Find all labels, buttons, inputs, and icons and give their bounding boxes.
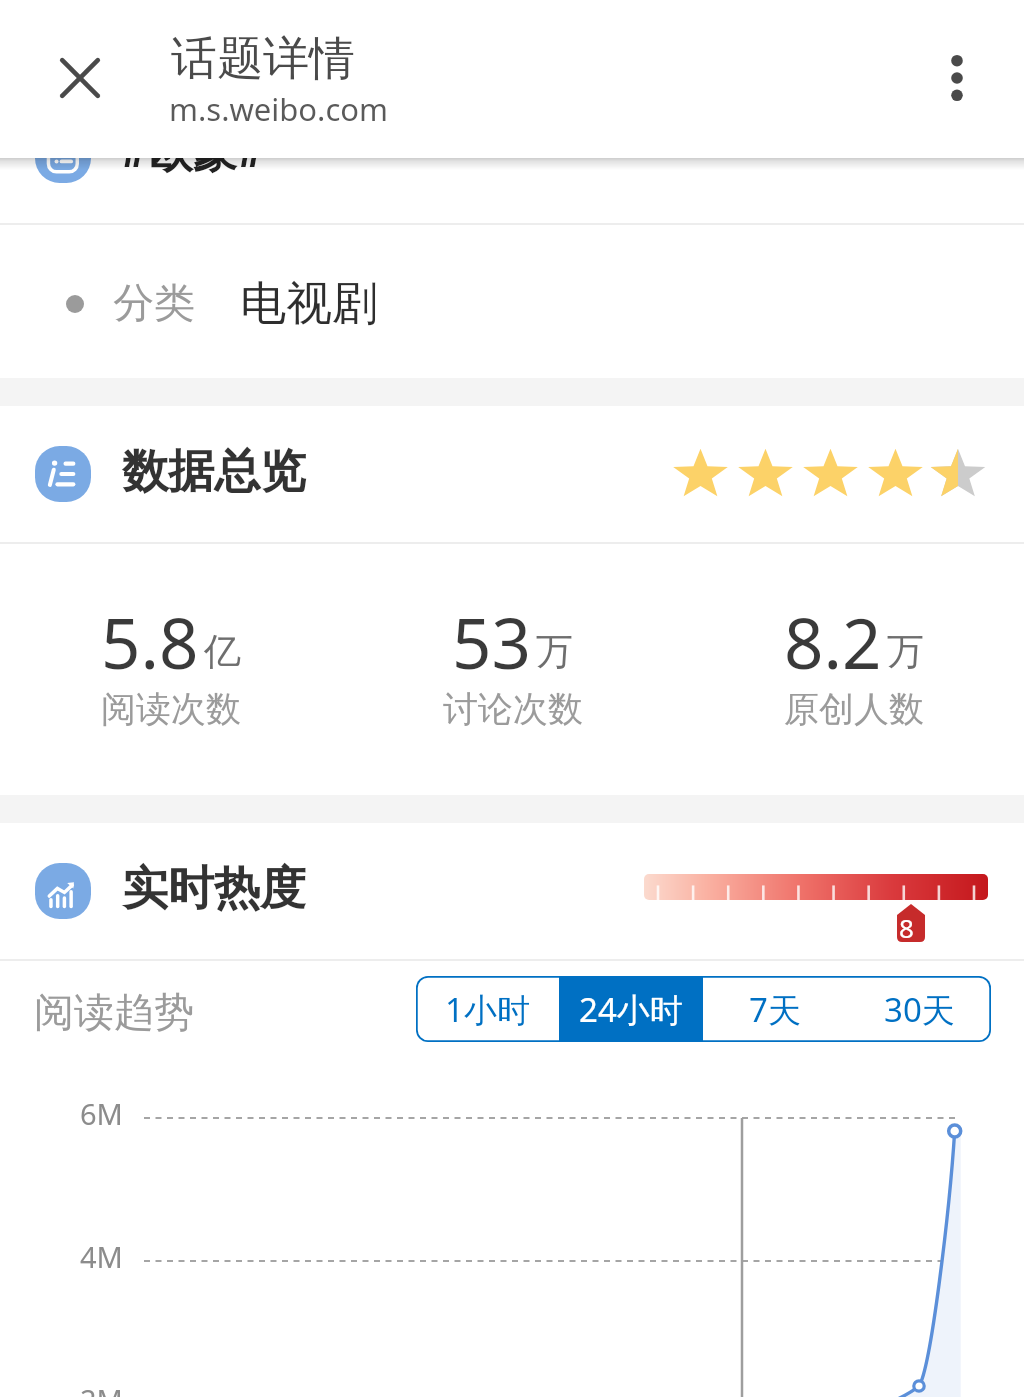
staticText: 话题详情 <box>171 30 355 88</box>
staticText: 万 <box>887 628 924 675</box>
button[interactable]: More options <box>902 23 1012 133</box>
staticText: #欧豪# <box>120 120 265 180</box>
staticText: 8 <box>899 910 914 945</box>
staticText: 亿 <box>204 628 241 675</box>
staticText: 5.8 <box>101 595 199 689</box>
button[interactable]: 1小时 <box>416 976 559 1042</box>
staticText: 24小时 <box>579 987 683 1032</box>
staticText: 电视剧 <box>240 275 378 333</box>
button[interactable]: 数据总览 <box>0 406 1024 542</box>
staticText: 30天 <box>884 987 955 1032</box>
button[interactable]: 53 <box>342 544 683 795</box>
button[interactable]: #欧豪# <box>0 83 1024 223</box>
staticText: 7天 <box>749 987 801 1032</box>
staticText: 原创人数 <box>784 687 924 731</box>
button[interactable]: Close <box>25 23 135 133</box>
button[interactable]: 分类 <box>0 225 1024 378</box>
staticText: 4M <box>80 1237 123 1276</box>
staticText: 实时热度 <box>122 860 306 918</box>
staticText: 1小时 <box>445 987 530 1032</box>
staticText: m.s.weibo.com <box>169 88 389 130</box>
staticText: 万 <box>536 628 573 675</box>
staticText: 阅读趋势 <box>34 987 194 1037</box>
button[interactable]: 8.2 <box>683 544 1024 795</box>
staticText: 阅读次数 <box>101 687 241 731</box>
button[interactable]: 5.8 <box>0 544 342 795</box>
button[interactable]: 30天 <box>847 976 991 1042</box>
staticText: 53 <box>452 595 531 689</box>
button[interactable]: 24小时 <box>559 976 703 1042</box>
staticText: 2M <box>80 1380 123 1397</box>
staticText: 分类 <box>113 278 195 330</box>
staticText: 数据总览 <box>122 443 306 501</box>
staticText: 8.2 <box>784 595 882 689</box>
staticText: 讨论次数 <box>443 687 583 731</box>
staticText: 6M <box>80 1094 123 1133</box>
button[interactable]: 实时热度 <box>0 823 1024 959</box>
button[interactable]: 7天 <box>703 976 847 1042</box>
